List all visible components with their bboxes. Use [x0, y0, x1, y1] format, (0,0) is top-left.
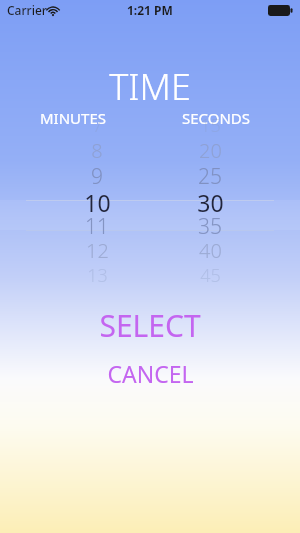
button[interactable]: Minutes picker — [42, 103, 152, 322]
staticText: 20 — [199, 137, 222, 163]
staticText: 13 — [87, 263, 108, 288]
staticText: 10 — [84, 187, 111, 213]
staticText: 35 — [198, 212, 222, 238]
staticText: 8 — [91, 137, 103, 163]
staticText: 12 — [86, 237, 109, 263]
staticText: 40 — [199, 237, 222, 263]
staticText: 25 — [198, 162, 222, 188]
button[interactable]: Seconds picker — [155, 103, 265, 322]
staticText: 30 — [197, 187, 224, 213]
staticText: SELECT — [99, 305, 201, 346]
staticText: CANCEL — [107, 358, 194, 389]
staticText: 45 — [200, 263, 221, 288]
staticText: 9 — [91, 162, 103, 188]
staticText: Carrier — [7, 2, 47, 18]
staticText: 1:21 PM — [127, 2, 173, 18]
staticText: 7 — [92, 113, 103, 138]
button[interactable]: CANCEL — [0, 355, 300, 391]
staticText: TIME — [0, 62, 300, 111]
staticText: SECONDS — [141, 108, 291, 128]
button[interactable]: SELECT — [0, 304, 300, 346]
staticText: 15 — [200, 113, 221, 138]
staticText: 11 — [85, 212, 109, 238]
staticText: MINUTES — [0, 108, 148, 128]
